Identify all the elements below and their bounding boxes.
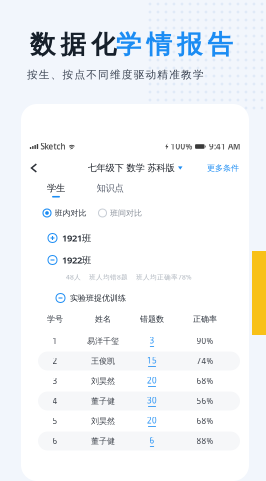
staticText: 班内对比 bbox=[54, 208, 86, 218]
staticText: 6 bbox=[149, 435, 154, 446]
button[interactable]: 更多条件 bbox=[203, 157, 243, 179]
staticText: 班人均错8题 bbox=[89, 273, 128, 281]
staticText: 1922班 bbox=[62, 254, 91, 266]
staticText: 易洋千玺 bbox=[87, 336, 119, 346]
staticText: 3 bbox=[149, 335, 154, 346]
staticText: 学情报告 bbox=[116, 29, 232, 60]
staticText: 刘昊然 bbox=[91, 376, 115, 386]
staticText: 错题数 bbox=[140, 314, 164, 324]
staticText: 100% bbox=[171, 141, 193, 152]
staticText: 30 bbox=[147, 395, 157, 406]
staticText: Sketch bbox=[40, 141, 65, 152]
staticText: 9:41 AM bbox=[209, 141, 240, 152]
staticText: 王俊凯 bbox=[91, 356, 115, 366]
staticText: 6 bbox=[52, 436, 57, 446]
button[interactable]: 1921班 bbox=[21, 228, 249, 248]
staticText: 学号 bbox=[47, 314, 63, 324]
staticText: 正确率 bbox=[193, 314, 217, 324]
staticText: 15 bbox=[147, 355, 157, 366]
staticText: 68% bbox=[196, 376, 213, 386]
button[interactable]: 4 bbox=[21, 391, 249, 411]
staticText: 学生 bbox=[47, 182, 65, 194]
staticText: 48人 bbox=[66, 273, 81, 281]
button[interactable]: 知识点 bbox=[89, 179, 131, 201]
staticText: 56% bbox=[196, 396, 213, 406]
staticText: 刘昊然 bbox=[91, 416, 115, 426]
button[interactable]: 实验班提优训练 bbox=[21, 288, 249, 308]
staticText: 董子健 bbox=[91, 436, 115, 446]
button[interactable]: 1922班 bbox=[21, 250, 249, 270]
staticText: 七年级下 数学 苏科版 bbox=[87, 162, 174, 174]
staticText: 知识点 bbox=[96, 182, 123, 194]
staticText: 按生、按点不同维度驱动精准教学 bbox=[27, 68, 204, 81]
staticText: 董子健 bbox=[91, 396, 115, 406]
button[interactable]: 2 bbox=[21, 351, 249, 371]
button[interactable]: 6 bbox=[21, 431, 249, 451]
staticText: 姓名 bbox=[95, 314, 111, 324]
staticText: 90% bbox=[196, 336, 213, 346]
staticText: 班间对比 bbox=[110, 208, 142, 218]
staticText: 74% bbox=[196, 356, 213, 366]
staticText: 班人均正确率78% bbox=[136, 273, 192, 281]
staticText: 3 bbox=[52, 376, 57, 386]
button[interactable]: 七年级下 数学 苏科版 bbox=[87, 157, 182, 179]
staticText: 5 bbox=[52, 416, 57, 426]
button[interactable]: 学生 bbox=[35, 179, 77, 201]
button[interactable]: 1 bbox=[21, 331, 249, 351]
button[interactable]: 班间对比 bbox=[98, 205, 142, 221]
staticText: 数据化 bbox=[30, 29, 116, 60]
staticText: 20 bbox=[147, 375, 157, 386]
staticText: 68% bbox=[196, 416, 213, 426]
button[interactable]: Back bbox=[21, 157, 47, 179]
staticText: 2 bbox=[52, 356, 57, 366]
staticText: 4 bbox=[52, 396, 57, 406]
staticText: 88% bbox=[196, 436, 213, 446]
staticText: 实验班提优训练 bbox=[70, 293, 126, 303]
staticText: 1 bbox=[52, 336, 57, 346]
button[interactable]: 5 bbox=[21, 411, 249, 431]
button[interactable]: 3 bbox=[21, 371, 249, 391]
staticText: 20 bbox=[147, 415, 157, 426]
button[interactable]: 班内对比 bbox=[43, 205, 86, 221]
staticText: 1921班 bbox=[62, 232, 91, 244]
staticText: 更多条件 bbox=[207, 163, 239, 173]
